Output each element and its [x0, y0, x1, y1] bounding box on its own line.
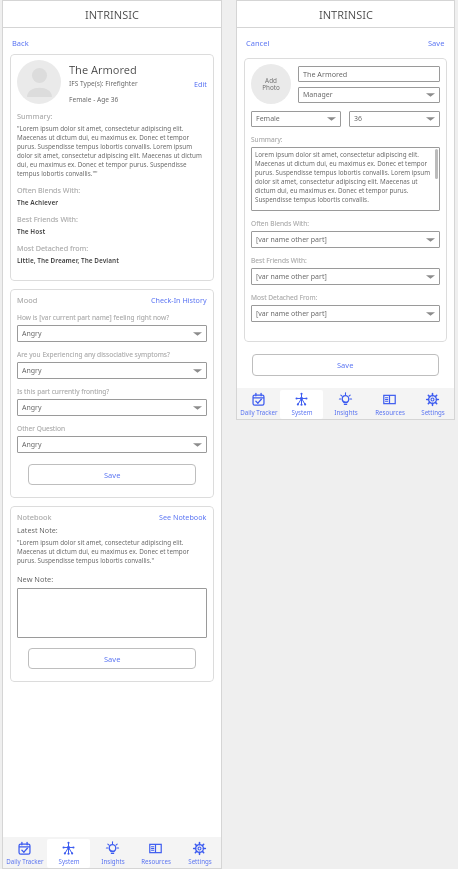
- staticText: Mood: [17, 295, 151, 305]
- staticText: See Notebook: [159, 512, 207, 522]
- button[interactable]: 36: [349, 111, 440, 127]
- staticText: Back: [12, 38, 29, 48]
- staticText: Resources: [141, 857, 171, 865]
- staticText: Angry: [22, 366, 193, 376]
- button[interactable]: Angry: [17, 362, 207, 379]
- staticText: Latest Note:: [17, 525, 58, 535]
- staticText: [var name other part]: [256, 309, 426, 319]
- staticText: Often Blends With:: [251, 219, 310, 228]
- staticText: Notebook: [17, 512, 159, 522]
- staticText: Daily Tracker: [6, 857, 44, 865]
- staticText: Insights: [101, 857, 125, 865]
- staticText: Little, The Dreamer, The Deviant: [17, 256, 119, 265]
- staticText: New Note:: [17, 574, 54, 584]
- button[interactable]: [var name other part]: [251, 231, 440, 248]
- button[interactable]: [var name other part]: [251, 305, 440, 322]
- button[interactable]: Female: [251, 111, 341, 127]
- staticText: System: [58, 857, 80, 865]
- staticText: 36: [354, 114, 426, 124]
- staticText: Insights: [334, 408, 358, 416]
- staticText: How is [var current part name] feeling r…: [17, 313, 170, 322]
- button[interactable]: Insights: [91, 839, 134, 868]
- button[interactable]: [var name other part]: [251, 268, 440, 285]
- button[interactable]: Save: [252, 354, 439, 376]
- staticText: Manager: [303, 90, 426, 100]
- staticText: Save: [337, 360, 354, 370]
- staticText: Is this part currently fronting?: [17, 387, 110, 396]
- button[interactable]: Back: [12, 38, 29, 48]
- button[interactable]: Save: [28, 648, 196, 669]
- staticText: The Host: [17, 227, 46, 236]
- button[interactable]: Angry: [17, 399, 207, 416]
- button[interactable]: Save: [28, 464, 196, 485]
- button[interactable]: System: [280, 390, 323, 419]
- staticText: The Armored: [69, 62, 137, 77]
- staticText: Female - Age 36: [69, 95, 119, 104]
- staticText: Add Photo: [262, 76, 280, 92]
- staticText: Save: [104, 470, 121, 480]
- staticText: The Achiever: [17, 198, 59, 207]
- staticText: Settings: [188, 857, 212, 865]
- staticText: INTRINSIC: [319, 7, 373, 22]
- staticText: Resources: [375, 408, 405, 416]
- staticText: Angry: [22, 440, 193, 450]
- staticText: "Lorem ipsum dolor sit amet, consectetur…: [17, 538, 207, 565]
- staticText: Daily Tracker: [240, 408, 278, 416]
- staticText: [var name other part]: [256, 235, 426, 245]
- staticText: Best Friends With:: [251, 256, 307, 265]
- staticText: Often Blends With:: [17, 185, 81, 195]
- button[interactable]: [17, 588, 207, 638]
- staticText: Most Detached From:: [251, 293, 318, 302]
- staticText: Other Question: [17, 424, 66, 433]
- button[interactable]: Save: [428, 38, 445, 48]
- button[interactable]: Daily Tracker: [3, 839, 46, 868]
- button[interactable]: Add Photo: [251, 64, 291, 104]
- button[interactable]: Resources: [368, 390, 411, 419]
- staticText: System: [291, 408, 313, 416]
- staticText: The Armored: [303, 69, 348, 79]
- staticText: Save: [104, 654, 121, 664]
- staticText: Angry: [22, 403, 193, 413]
- staticText: Edit: [194, 79, 207, 89]
- staticText: Summary:: [251, 135, 283, 144]
- staticText: Most Detached from:: [17, 243, 89, 253]
- staticText: Are you Experiencing any dissociative sy…: [17, 350, 170, 359]
- staticText: Save: [428, 38, 445, 48]
- button[interactable]: Cancel: [246, 38, 270, 48]
- staticText: [var name other part]: [256, 272, 426, 282]
- staticText: Summary:: [17, 111, 53, 121]
- button[interactable]: Settings: [178, 839, 221, 868]
- staticText: IFS Type(s): Firefighter: [69, 79, 194, 88]
- staticText: Angry: [22, 329, 193, 339]
- button[interactable]: Settings: [411, 390, 454, 419]
- button[interactable]: The Armored: [298, 66, 440, 82]
- staticText: INTRINSIC: [85, 7, 139, 22]
- staticText: Lorem ipsum dolor sit amet, consectetur …: [255, 150, 431, 204]
- button[interactable]: Lorem ipsum dolor sit amet, consectetur …: [251, 147, 440, 211]
- button[interactable]: Edit: [194, 79, 207, 89]
- button[interactable]: Resources: [134, 839, 177, 868]
- button[interactable]: Check-In History: [151, 295, 207, 305]
- staticText: Check-In History: [151, 295, 207, 305]
- button[interactable]: Daily Tracker: [237, 390, 280, 419]
- staticText: Best Friends With:: [17, 214, 78, 224]
- button[interactable]: Angry: [17, 325, 207, 342]
- staticText: Female: [256, 114, 327, 124]
- button[interactable]: Manager: [298, 87, 440, 103]
- button[interactable]: Angry: [17, 436, 207, 453]
- staticText: Settings: [421, 408, 445, 416]
- button[interactable]: See Notebook: [159, 512, 207, 522]
- button[interactable]: System: [47, 839, 90, 868]
- staticText: Cancel: [246, 38, 270, 48]
- staticText: "Lorem ipsum dolor sit amet, consectetur…: [17, 124, 207, 178]
- button[interactable]: Insights: [324, 390, 367, 419]
